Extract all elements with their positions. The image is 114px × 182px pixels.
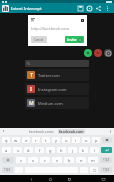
button[interactable]: Back (28, 176, 34, 182)
staticText: ?123 (4, 168, 11, 172)
staticText: a (5, 148, 8, 153)
button[interactable]: d (24, 147, 33, 153)
staticText: x (32, 158, 35, 163)
button[interactable]: Settings (104, 49, 112, 57)
button[interactable]: Shift (2, 157, 14, 163)
button[interactable]: Save (76, 4, 85, 13)
button[interactable]: I (25, 83, 89, 95)
staticText: g (49, 148, 52, 153)
staticText: k (82, 148, 85, 153)
button[interactable]: , (15, 167, 23, 173)
button[interactable]: t (42, 137, 50, 143)
staticText: t (45, 138, 47, 143)
button[interactable]: p (92, 137, 100, 143)
staticText: u (65, 138, 68, 143)
button[interactable]: r (32, 137, 40, 143)
button[interactable]: v (52, 157, 62, 163)
button[interactable]: o (82, 137, 90, 143)
button[interactable]: Cancel (31, 36, 47, 43)
staticText: n (80, 158, 83, 163)
button[interactable]: Settings (85, 4, 94, 13)
button[interactable]: z (16, 157, 26, 163)
button[interactable]: m (88, 157, 98, 163)
button[interactable]: Backspace (102, 137, 112, 143)
button[interactable]: j (68, 147, 77, 153)
button[interactable]: M (25, 97, 89, 109)
staticText: Instagram.com (38, 87, 67, 92)
staticText: l (94, 148, 96, 153)
staticText: Cancel (34, 38, 44, 42)
staticText: . (84, 168, 85, 172)
button[interactable]: Keyboard (100, 176, 106, 182)
button[interactable] (25, 60, 89, 67)
staticText: q (5, 138, 8, 143)
staticText: Intent Intercept (11, 6, 42, 11)
button[interactable]: c (40, 157, 50, 163)
staticText: Twitter.com (38, 73, 60, 78)
button[interactable]: k (79, 147, 88, 153)
button[interactable]: e (22, 137, 30, 143)
button[interactable]: u (62, 137, 70, 143)
staticText: e (25, 138, 28, 143)
button[interactable]: ?123 (100, 167, 112, 173)
staticText: j (72, 148, 74, 153)
button[interactable]: T (25, 69, 89, 81)
staticText: facebook.coms (29, 129, 54, 134)
staticText: Medium.com (38, 101, 63, 106)
staticText: ?123 (103, 168, 110, 172)
button[interactable]: b (64, 157, 74, 163)
button[interactable]: f (35, 147, 44, 153)
staticText: w (14, 138, 18, 143)
button[interactable]: i (72, 137, 80, 143)
button[interactable]: Symbols (100, 157, 112, 163)
staticText: p (95, 138, 98, 143)
staticText: f (39, 148, 41, 153)
staticText: r (35, 138, 37, 143)
button[interactable]: More options (103, 4, 112, 13)
button[interactable]: q (2, 137, 10, 143)
button[interactable]: Recent apps (66, 176, 72, 182)
staticText: h (60, 148, 63, 153)
button[interactable]: facebook.com (58, 129, 85, 134)
button[interactable]: Expand suggestions (109, 130, 112, 133)
button[interactable]: l (90, 147, 99, 153)
staticText: b (68, 158, 71, 163)
button[interactable]: App icon (2, 5, 9, 12)
staticText: c (44, 158, 46, 163)
staticText: I (30, 86, 32, 93)
staticText: http://facebook.com (31, 26, 70, 31)
button[interactable]: Emoji (90, 167, 98, 173)
staticText: z (20, 158, 22, 163)
button[interactable]: Close (80, 18, 84, 22)
staticText: , (19, 168, 20, 172)
staticText: d (27, 148, 30, 153)
button[interactable]: s (13, 147, 22, 153)
button[interactable]: g (46, 147, 55, 153)
button[interactable]: Enter (101, 147, 112, 153)
staticText: T (30, 72, 33, 79)
staticText: i (75, 138, 77, 143)
button[interactable]: Add (84, 49, 92, 57)
button[interactable]: x (28, 157, 38, 163)
button[interactable]: facebook.coms (29, 129, 54, 134)
button[interactable]: n (76, 157, 86, 163)
button[interactable]: Remove (94, 49, 102, 57)
button[interactable]: Voice input (2, 130, 5, 133)
button[interactable]: w (12, 137, 20, 143)
button[interactable]: a (2, 147, 11, 153)
button[interactable]: y (52, 137, 60, 143)
staticText: m (91, 158, 95, 163)
staticText: y (55, 138, 58, 143)
staticText: o (85, 138, 88, 143)
button[interactable]: ?123 (2, 167, 13, 173)
staticText: facebook.com (59, 129, 84, 134)
button[interactable]: Invite (65, 36, 84, 43)
button[interactable]: Share (94, 4, 103, 13)
staticText: s (17, 148, 19, 153)
staticText: Invite (67, 37, 77, 42)
button[interactable]: Home (47, 176, 53, 182)
staticText: M (29, 100, 34, 107)
button[interactable]: h (57, 147, 66, 153)
